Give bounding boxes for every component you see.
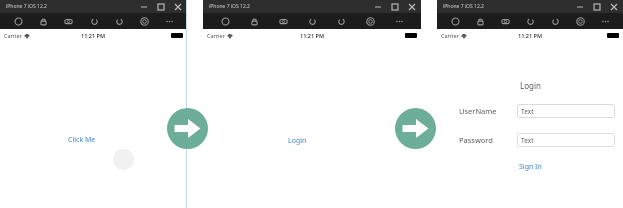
staticText: 11:21 PM [518,32,543,39]
button[interactable]: Click Me [66,133,98,147]
staticText: 11:21 PM [81,32,106,39]
staticText: Sign In [519,162,542,172]
button[interactable]: Sign In [517,160,544,174]
button[interactable]: Next [167,108,208,149]
button[interactable]: Rotate right [334,14,348,28]
button[interactable]: Close [173,2,183,12]
staticText: Carrier [4,32,22,39]
button[interactable]: Rotate left [305,14,319,28]
button[interactable]: Minimize [139,2,149,12]
button[interactable]: Lock [36,14,50,28]
button[interactable]: More [598,14,612,28]
staticText: 11:21 PM [300,32,325,39]
staticText: iPhone 7 iOS 12.2 [6,3,47,10]
staticText: Carrier [441,32,459,39]
button[interactable]: Home [218,14,232,28]
button[interactable]: Screenshot [276,14,290,28]
staticText: Password [459,135,493,145]
staticText: Click Me [68,135,96,145]
staticText: iPhone 7 iOS 12.2 [443,3,484,10]
button[interactable]: Home [11,14,25,28]
button[interactable]: Rotate left [87,14,101,28]
staticText: Login [520,80,541,91]
button[interactable]: Settings [573,14,587,28]
button[interactable]: Next [395,108,436,149]
button[interactable]: Minimize [575,2,585,12]
button[interactable]: Screenshot [61,14,75,28]
button[interactable]: Minimize [373,2,383,12]
staticText: Carrier [207,32,225,39]
button[interactable]: Text [517,104,615,118]
button[interactable]: Rotate left [523,14,537,28]
staticText: Text [521,136,534,145]
button[interactable]: Lock [247,14,261,28]
button[interactable]: Settings [137,14,151,28]
button[interactable]: Rotate right [548,14,562,28]
button[interactable]: Maximize [156,2,166,12]
button[interactable]: Close [407,2,417,12]
button[interactable]: Text [517,133,615,147]
button[interactable]: Settings [363,14,377,28]
button[interactable]: Lock [473,14,487,28]
button[interactable]: Maximize [390,2,400,12]
staticText: Text [521,107,534,116]
button[interactable]: Rotate right [112,14,126,28]
button[interactable]: Close [609,2,619,12]
button[interactable]: Screenshot [498,14,512,28]
staticText: UserName [459,106,497,116]
staticText: iPhone 7 iOS 12.2 [209,3,250,10]
staticText: Login [288,136,307,146]
button[interactable]: Progress [113,149,134,170]
button[interactable]: More [392,14,406,28]
button[interactable]: Login [286,134,309,148]
button[interactable]: Maximize [592,2,602,12]
button[interactable]: More [162,14,176,28]
button[interactable]: Home [448,14,462,28]
